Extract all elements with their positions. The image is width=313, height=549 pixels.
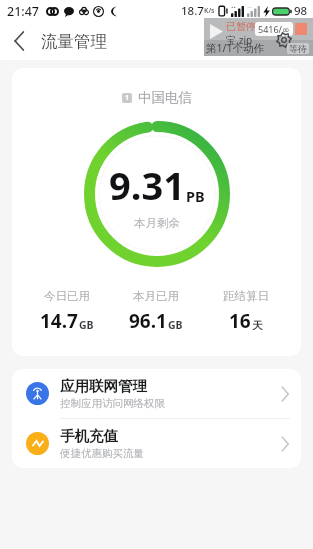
button[interactable]: Back [0, 22, 38, 60]
staticText: 便捷优惠购买流量 [60, 447, 144, 460]
staticText: 第1/1个动作 [206, 41, 264, 55]
staticText: GB [79, 318, 94, 332]
staticText: 流量管理 [41, 31, 107, 52]
staticText: 距结算日 [223, 289, 269, 303]
staticText: PB [186, 186, 205, 206]
staticText: 已暂停作 列 [226, 19, 279, 33]
staticText: 16 [229, 308, 251, 334]
button[interactable]: Download task [204, 18, 313, 56]
staticText: 18.7 [181, 3, 204, 19]
staticText: 9.31 [109, 159, 185, 211]
staticText: 手机充值 [60, 427, 118, 445]
staticText: 今日已用 [44, 289, 90, 303]
staticText: 天 [252, 319, 263, 332]
staticText: 控制应用访问网络权限 [60, 397, 165, 410]
staticText: 5416/∞ [258, 23, 290, 35]
staticText: 等待 [289, 43, 307, 54]
staticText: 98 [294, 3, 308, 19]
staticText: 中国电信 [138, 89, 192, 106]
button[interactable]: 应用联网管理 [12, 369, 301, 418]
staticText: GB [168, 318, 183, 332]
button[interactable]: 手机充值 [12, 419, 301, 468]
staticText: 1 [125, 93, 130, 103]
staticText: 本月剩余 [134, 216, 180, 230]
staticText: 本月已用 [133, 289, 179, 303]
staticText: K/s [204, 6, 215, 16]
staticText: 应用联网管理 [60, 377, 147, 395]
staticText: 14.7 [40, 308, 78, 334]
staticText: 21:47 [7, 3, 40, 20]
staticText: 宝.zip [226, 33, 253, 47]
staticText: 96.1 [129, 308, 167, 334]
